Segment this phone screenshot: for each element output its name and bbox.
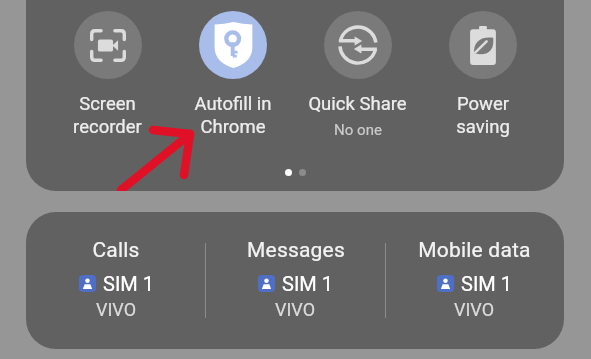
button[interactable]: Screen recorder: [45, 11, 170, 138]
button[interactable]: Power saving: [420, 11, 545, 138]
other: Quick Share: [324, 11, 392, 79]
staticText: VIVO: [275, 299, 316, 320]
staticText: Power saving: [456, 93, 510, 138]
staticText: SIM 1: [282, 272, 333, 295]
staticText: Messages: [247, 238, 345, 263]
other: Power saving: [449, 11, 517, 79]
button[interactable]: Autofill in Chrome: [170, 11, 295, 138]
other: Autofill in Chrome: [199, 11, 267, 79]
staticText: Quick Share: [308, 93, 407, 115]
button[interactable]: Quick Share: [295, 11, 420, 139]
button[interactable]: Calls: [26, 212, 206, 349]
staticText: Calls: [92, 238, 140, 263]
staticText: Autofill in Chrome: [194, 93, 272, 138]
staticText: SIM 1: [461, 272, 512, 295]
other: Screen recorder: [74, 11, 142, 79]
button[interactable]: Messages: [206, 212, 385, 349]
staticText: SIM 1: [103, 272, 154, 295]
button[interactable]: Mobile data: [385, 212, 564, 349]
staticText: VIVO: [96, 299, 137, 320]
staticText: Screen recorder: [73, 93, 142, 138]
staticText: VIVO: [454, 299, 495, 320]
staticText: Mobile data: [418, 238, 531, 263]
staticText: No one: [334, 121, 382, 139]
